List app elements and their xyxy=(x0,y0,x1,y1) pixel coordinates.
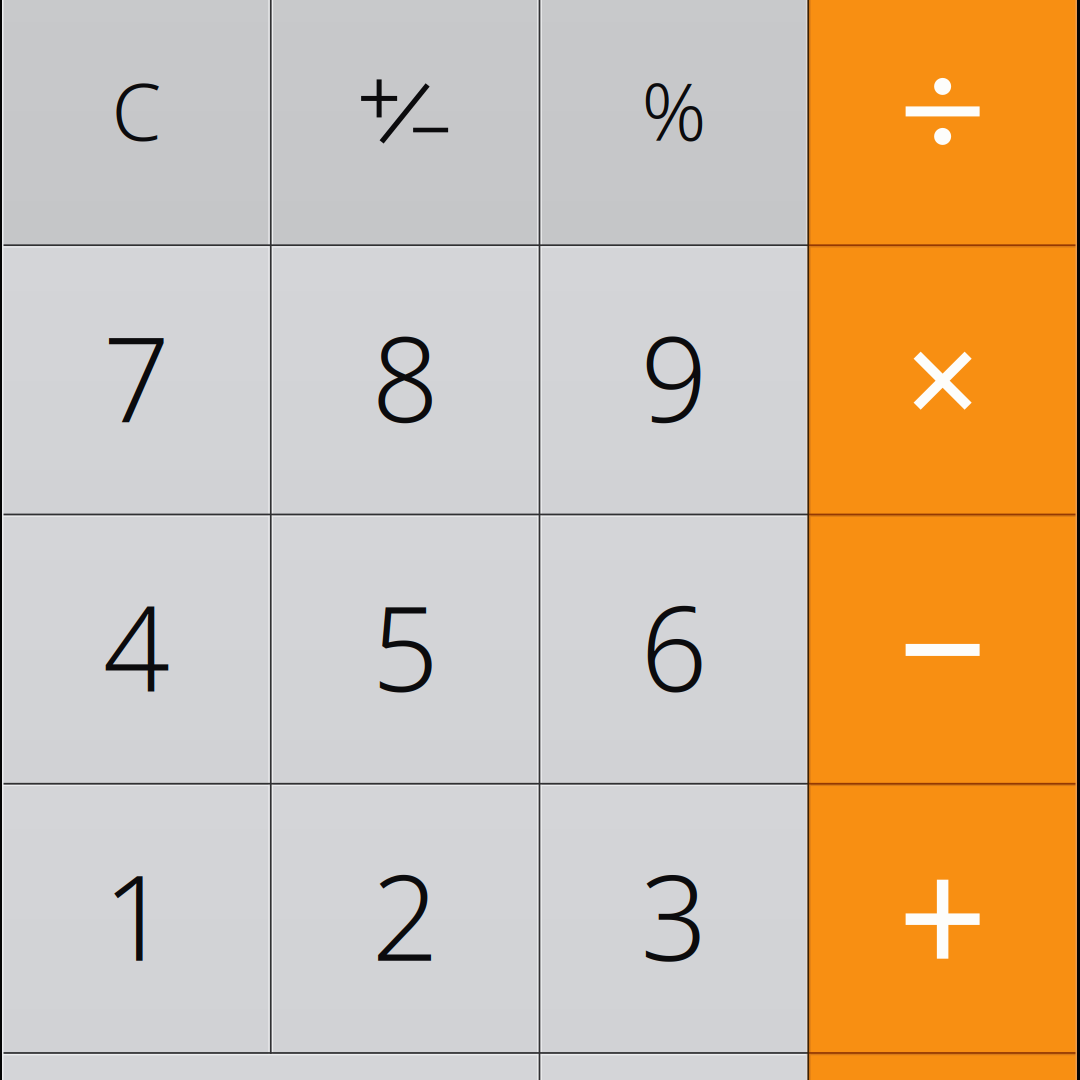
button[interactable]: Decimal point xyxy=(539,1054,808,1080)
button[interactable]: Clear xyxy=(2,0,271,246)
button[interactable]: Equals xyxy=(808,1054,1077,1080)
button[interactable]: 3 xyxy=(539,784,808,1054)
staticText: 2 xyxy=(372,837,439,993)
button[interactable]: Plus xyxy=(808,784,1077,1054)
button[interactable]: Minus xyxy=(808,515,1077,784)
staticText: 3 xyxy=(640,837,707,993)
button[interactable]: 7 xyxy=(2,246,271,515)
staticText: 5 xyxy=(372,568,439,724)
button[interactable]: Percent xyxy=(539,0,808,246)
button[interactable]: 2 xyxy=(271,784,540,1054)
staticText: 8 xyxy=(372,299,439,455)
button[interactable]: 8 xyxy=(271,246,540,515)
button[interactable]: 5 xyxy=(271,515,540,784)
staticText: 1 xyxy=(103,837,170,993)
staticText: 7 xyxy=(103,299,170,455)
staticText: 9 xyxy=(640,299,707,455)
button[interactable]: 1 xyxy=(2,784,271,1054)
staticText: % xyxy=(641,56,706,162)
button[interactable]: 6 xyxy=(539,515,808,784)
staticText: 4 xyxy=(103,568,170,724)
button[interactable]: 9 xyxy=(539,246,808,515)
button[interactable]: 0 xyxy=(2,1054,539,1080)
button[interactable]: Multiply xyxy=(808,246,1077,515)
button[interactable]: Divide xyxy=(808,0,1077,246)
button[interactable]: Toggle sign xyxy=(271,0,540,246)
staticText: 6 xyxy=(640,568,707,724)
button[interactable]: 4 xyxy=(2,515,271,784)
staticText: C xyxy=(111,56,161,162)
